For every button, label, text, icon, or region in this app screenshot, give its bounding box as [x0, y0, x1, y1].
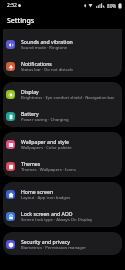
staticText: Modes · Routines: [21, 23, 55, 29]
staticText: Modes / Routines: [21, 16, 64, 23]
staticText: Home screen: [21, 188, 54, 195]
staticText: Biometrics · Permission manager: [21, 245, 87, 251]
staticText: Notifications: [21, 60, 52, 67]
staticText: Sound mode · Ringtone: [21, 45, 68, 51]
button[interactable]: Sounds and vibration: [3, 33, 122, 55]
staticText: Screen lock type · Always On Display: [21, 217, 93, 223]
staticText: 80%: [107, 3, 117, 9]
staticText: 2:52: [7, 2, 17, 9]
button[interactable]: Wallpaper and style: [3, 133, 122, 155]
button[interactable]: Themes: [3, 155, 122, 177]
staticText: Wallpaper and style: [21, 138, 69, 145]
staticText: Sounds and vibration: [21, 38, 73, 45]
button[interactable]: Battery: [3, 105, 122, 127]
staticText: Brightness · Eye comfort shield · Naviga…: [21, 95, 115, 101]
staticText: Layout · App icon badges: [21, 195, 71, 201]
button[interactable]: Lock screen and AOD: [3, 205, 122, 227]
button[interactable]: Display: [3, 83, 122, 105]
button[interactable]: Notifications: [3, 55, 122, 77]
staticText: Battery: [21, 110, 39, 117]
button[interactable]: Home screen: [3, 183, 122, 205]
staticText: Display: [21, 88, 39, 95]
staticText: Lock screen and AOD: [21, 210, 73, 217]
button[interactable]: Security and privacy: [3, 233, 122, 255]
staticText: Wallpapers · Color palette: [21, 145, 72, 151]
staticText: Themes · Wallpapers · Icons: [21, 167, 76, 173]
button[interactable]: Modes / Routines: [3, 11, 122, 33]
staticText: Status bar · Do not disturb: [21, 67, 73, 73]
staticText: Security and privacy: [21, 238, 70, 245]
staticText: Themes: [21, 160, 41, 167]
staticText: Settings: [7, 16, 35, 26]
staticText: Power saving · Charging: [21, 117, 69, 123]
